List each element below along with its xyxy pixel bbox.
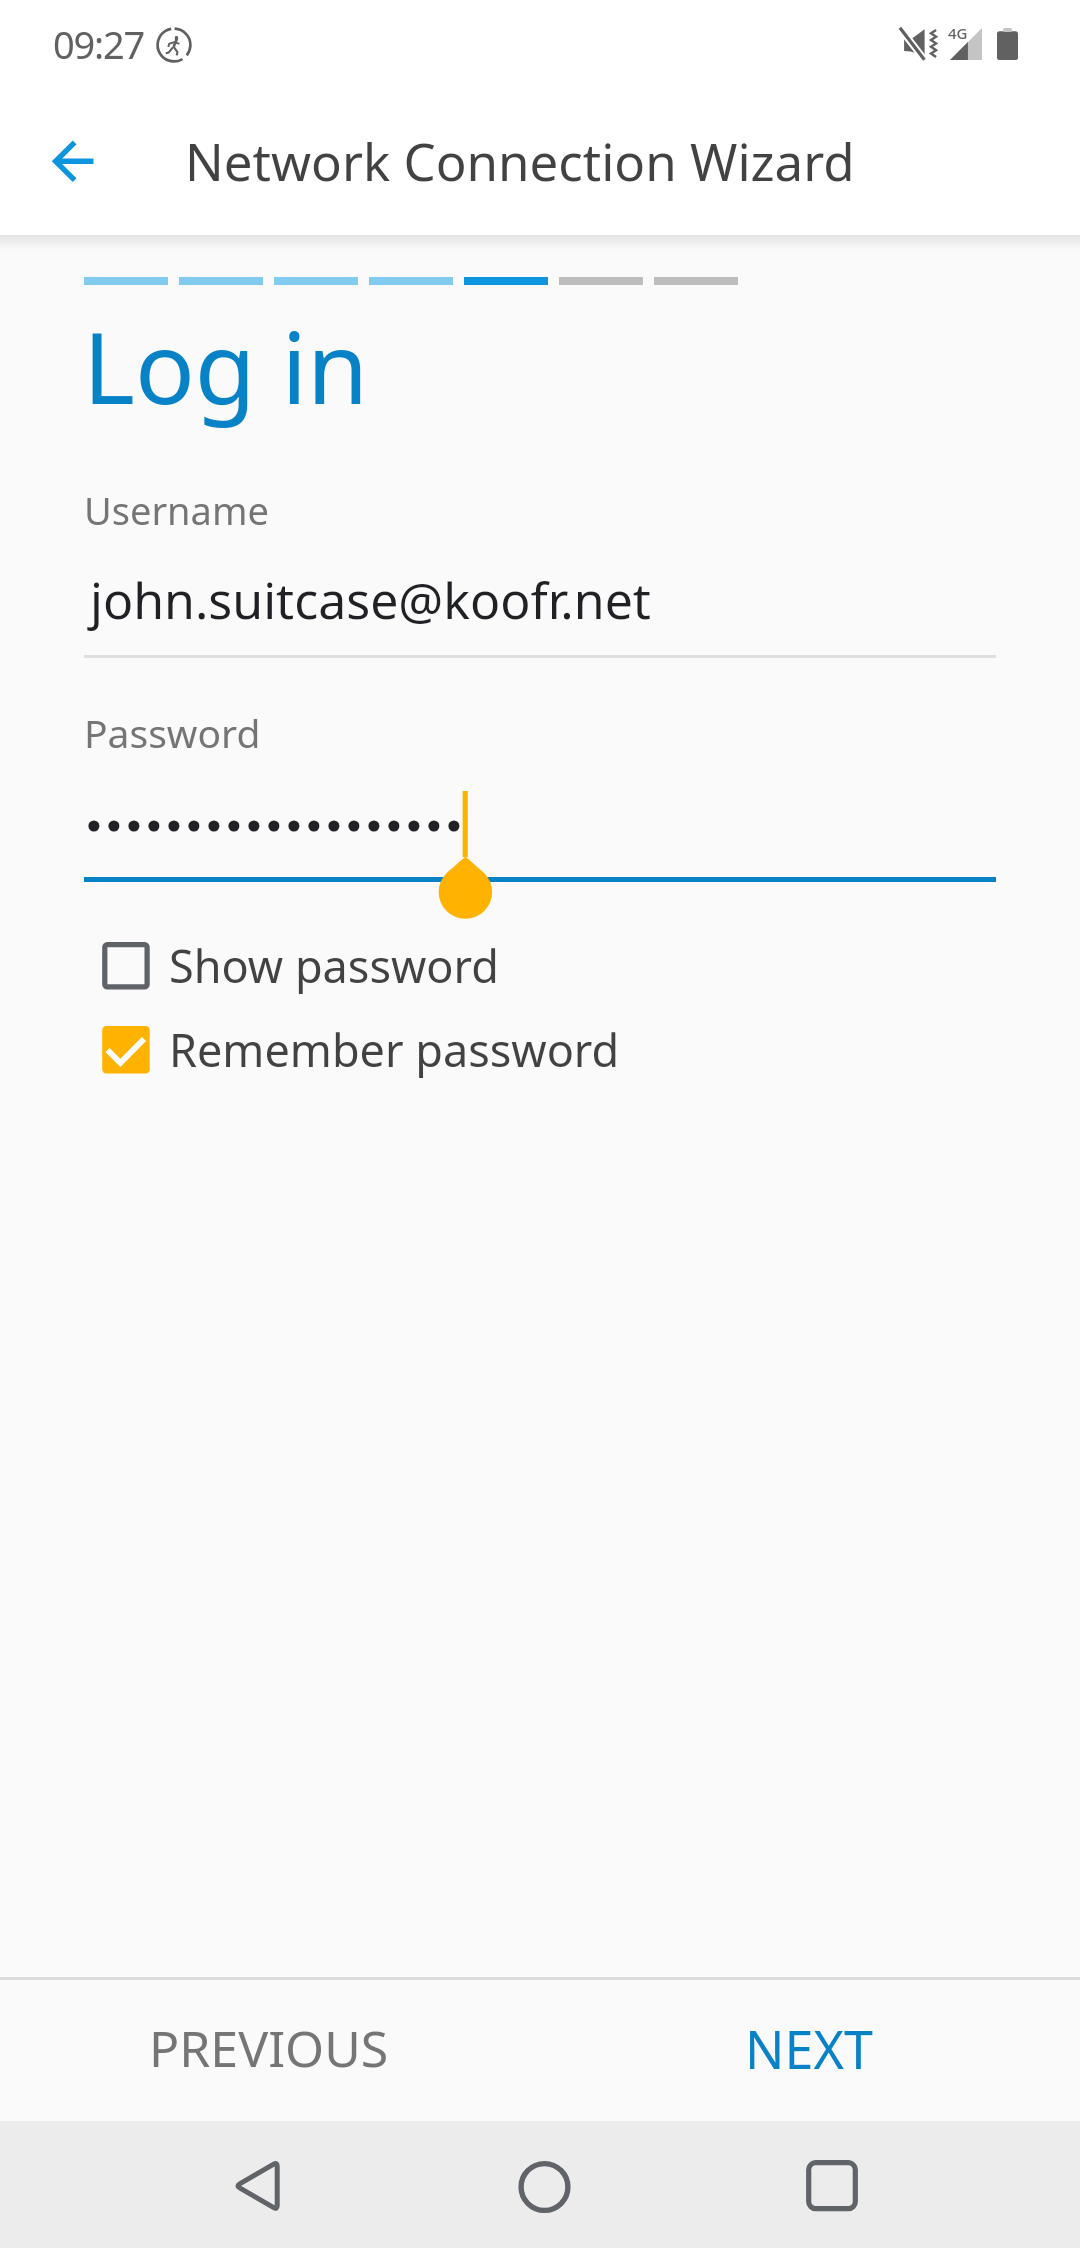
staticText: Network Connection Wizard: [185, 126, 855, 195]
staticText: Log in: [83, 298, 369, 433]
staticText: Password: [84, 706, 261, 759]
staticText: NEXT: [745, 2013, 873, 2084]
button[interactable]: PREVIOUS: [110, 1980, 430, 2121]
staticText: Remember password: [169, 1019, 620, 1080]
staticText: 4G: [948, 23, 968, 43]
button[interactable]: Recent apps: [750, 2121, 910, 2248]
button[interactable]: Back: [178, 2121, 338, 2248]
staticText: 09:27: [53, 18, 145, 70]
button[interactable]: Username: [84, 480, 996, 658]
staticText: john.suitcase@koofr.net: [90, 566, 651, 634]
staticText: Show password: [169, 935, 499, 996]
button[interactable]: Back: [26, 115, 118, 207]
button[interactable]: Home: [464, 2121, 624, 2248]
button[interactable]: NEXT: [700, 1980, 940, 2121]
staticText: Username: [84, 484, 269, 536]
staticText: PREVIOUS: [149, 2014, 389, 2082]
button[interactable]: Show password: [60, 924, 760, 1008]
button[interactable]: Password: [84, 702, 996, 884]
button[interactable]: Remember password: [60, 1008, 760, 1092]
